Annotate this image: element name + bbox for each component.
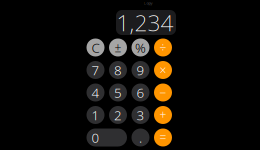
button[interactable]: ÷ bbox=[154, 38, 172, 56]
staticText: ÷ bbox=[159, 39, 166, 55]
staticText: 1,234 bbox=[116, 7, 173, 37]
staticText: × bbox=[159, 62, 166, 78]
staticText: 1 bbox=[91, 106, 99, 124]
button[interactable]: − bbox=[154, 83, 172, 101]
button[interactable]: = bbox=[154, 128, 172, 146]
staticText: + bbox=[159, 107, 166, 123]
staticText: % bbox=[135, 39, 146, 56]
button[interactable]: . bbox=[131, 128, 149, 146]
button[interactable]: × bbox=[154, 61, 172, 79]
staticText: 5 bbox=[114, 84, 122, 101]
staticText: ± bbox=[114, 39, 121, 55]
staticText: C bbox=[91, 39, 99, 56]
button[interactable]: 3 bbox=[131, 106, 149, 124]
staticText: 3 bbox=[136, 106, 144, 124]
staticText: 7 bbox=[91, 61, 99, 79]
staticText: . bbox=[139, 129, 142, 146]
staticText: 8 bbox=[114, 61, 122, 79]
button[interactable]: 5 bbox=[109, 83, 127, 101]
button[interactable]: 1 bbox=[86, 106, 104, 124]
button[interactable]: 9 bbox=[131, 61, 149, 79]
staticText: Copy bbox=[143, 0, 152, 6]
button[interactable]: 8 bbox=[109, 61, 127, 79]
button[interactable]: 0 bbox=[86, 128, 127, 146]
button[interactable]: + bbox=[154, 106, 172, 124]
button[interactable]: 4 bbox=[86, 83, 104, 101]
staticText: 0 bbox=[91, 129, 99, 146]
button[interactable]: % bbox=[131, 38, 149, 56]
staticText: − bbox=[159, 84, 166, 100]
staticText: 4 bbox=[91, 84, 99, 101]
staticText: 6 bbox=[136, 84, 144, 101]
button[interactable]: 2 bbox=[109, 106, 127, 124]
button[interactable]: 6 bbox=[131, 83, 149, 101]
staticText: 9 bbox=[136, 61, 144, 79]
button[interactable]: 7 bbox=[86, 61, 104, 79]
staticText: 2 bbox=[114, 106, 122, 124]
button[interactable]: C bbox=[86, 38, 104, 56]
button[interactable]: ± bbox=[109, 38, 127, 56]
staticText: = bbox=[159, 129, 166, 145]
